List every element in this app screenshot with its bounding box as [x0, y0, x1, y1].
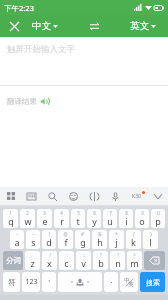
- staticText: 翻译结果: [7, 97, 37, 106]
- staticText: ~: [32, 231, 35, 237]
- staticText: 5: [77, 210, 80, 216]
- staticText: s: [31, 236, 36, 248]
- button[interactable]: @: [58, 230, 73, 249]
- button[interactable]: 8: [119, 209, 133, 228]
- staticText: z: [30, 257, 35, 269]
- button[interactable]: 翻译结果: [7, 97, 49, 106]
- staticText: w: [24, 215, 32, 227]
- staticText: m: [130, 257, 139, 269]
- button[interactable]: mic: [105, 187, 126, 205]
- button[interactable]: 123: [22, 272, 40, 292]
- staticText: j: [115, 236, 118, 248]
- button[interactable]: 分词: [3, 251, 23, 270]
- staticText: ': [48, 277, 50, 287]
- button[interactable]: ·: [104, 272, 118, 292]
- staticText: l: [149, 236, 152, 248]
- button[interactable]: 3: [37, 209, 52, 228]
- staticText: ;: [83, 252, 85, 258]
- button[interactable]: 、: [25, 251, 40, 270]
- staticText: n: [115, 257, 121, 269]
- button[interactable]: Chinese English toggle: [120, 272, 138, 292]
- button[interactable]: ~: [26, 230, 40, 249]
- button[interactable]: 6: [87, 209, 101, 228]
- staticText: v: [81, 257, 86, 269]
- staticText: d: [46, 236, 52, 248]
- button[interactable]: Backspace: [144, 251, 165, 270]
- staticText: x: [47, 257, 52, 269]
- button[interactable]: Close: [0, 15, 28, 37]
- staticText: y: [92, 215, 97, 227]
- button[interactable]: down: [147, 187, 168, 205]
- button[interactable]: :: [59, 251, 74, 270]
- button[interactable]: ;: [76, 251, 91, 270]
- button[interactable]: kb: [21, 187, 42, 205]
- button[interactable]: trans: [84, 187, 105, 205]
- staticText: u: [107, 215, 113, 227]
- staticText: b: [98, 257, 104, 269]
- staticText: 4: [60, 210, 63, 216]
- staticText: &: [98, 231, 102, 237]
- staticText: c: [64, 257, 69, 269]
- button[interactable]: 9: [135, 209, 149, 228]
- staticText: p: [155, 215, 161, 227]
- button[interactable]: ^: [127, 251, 142, 270]
- staticText: 中: [124, 277, 130, 284]
- button[interactable]: /: [42, 251, 57, 270]
- staticText: !: [117, 252, 119, 258]
- button[interactable]: Swap languages: [83, 15, 105, 37]
- staticText: 中文: [32, 20, 51, 32]
- staticText: 下午2:23: [4, 3, 34, 13]
- button[interactable]: !: [42, 230, 56, 249]
- staticText: 触屏开始输入文字: [7, 44, 75, 55]
- button[interactable]: ': [42, 272, 56, 292]
- staticText: k: [131, 236, 136, 248]
- staticText: i: [125, 215, 128, 227]
- button[interactable]: (: [126, 230, 141, 249]
- button[interactable]: 符: [3, 272, 20, 292]
- button[interactable]: Space: [58, 272, 102, 292]
- button[interactable]: ): [143, 230, 158, 249]
- button[interactable]: 1: [3, 209, 18, 228]
- staticText: @: [63, 231, 68, 237]
- button[interactable]: ?: [93, 251, 108, 270]
- button[interactable]: -: [10, 230, 24, 249]
- button[interactable]: k30: [126, 187, 147, 205]
- staticText: 7: [109, 210, 112, 216]
- button[interactable]: 触屏开始输入文字: [0, 37, 168, 85]
- staticText: e: [42, 215, 48, 227]
- staticText: #: [81, 231, 84, 237]
- staticText: ^: [133, 252, 136, 258]
- staticText: a: [14, 236, 20, 248]
- staticText: :: [66, 252, 68, 258]
- button[interactable]: 搜索: [140, 272, 165, 292]
- button[interactable]: 2: [20, 209, 35, 228]
- button[interactable]: grid: [0, 187, 21, 205]
- staticText: 3: [43, 210, 46, 216]
- button[interactable]: #: [75, 230, 90, 249]
- button[interactable]: *: [109, 230, 124, 249]
- staticText: ·: [110, 277, 113, 287]
- button[interactable]: 英文: [126, 15, 160, 37]
- button[interactable]: !: [110, 251, 125, 270]
- staticText: 英文: [130, 20, 149, 32]
- staticText: g: [80, 236, 86, 248]
- staticText: /: [49, 252, 51, 258]
- staticText: 0: [157, 210, 160, 216]
- button[interactable]: 4: [54, 209, 69, 228]
- button[interactable]: &: [92, 230, 107, 249]
- staticText: ?: [100, 252, 102, 258]
- button[interactable]: 7: [103, 209, 117, 228]
- staticText: !: [48, 231, 50, 237]
- button[interactable]: 中文: [28, 15, 62, 37]
- staticText: t: [76, 215, 80, 227]
- staticText: ): [150, 231, 152, 237]
- button[interactable]: emoji: [63, 187, 84, 205]
- staticText: (: [133, 231, 135, 237]
- other: Speak: [40, 97, 49, 106]
- button[interactable]: search: [42, 187, 63, 205]
- staticText: K30: [132, 193, 141, 200]
- button[interactable]: 0: [151, 209, 165, 228]
- staticText: 1: [9, 210, 12, 216]
- button[interactable]: 5: [71, 209, 85, 228]
- staticText: f: [64, 236, 68, 248]
